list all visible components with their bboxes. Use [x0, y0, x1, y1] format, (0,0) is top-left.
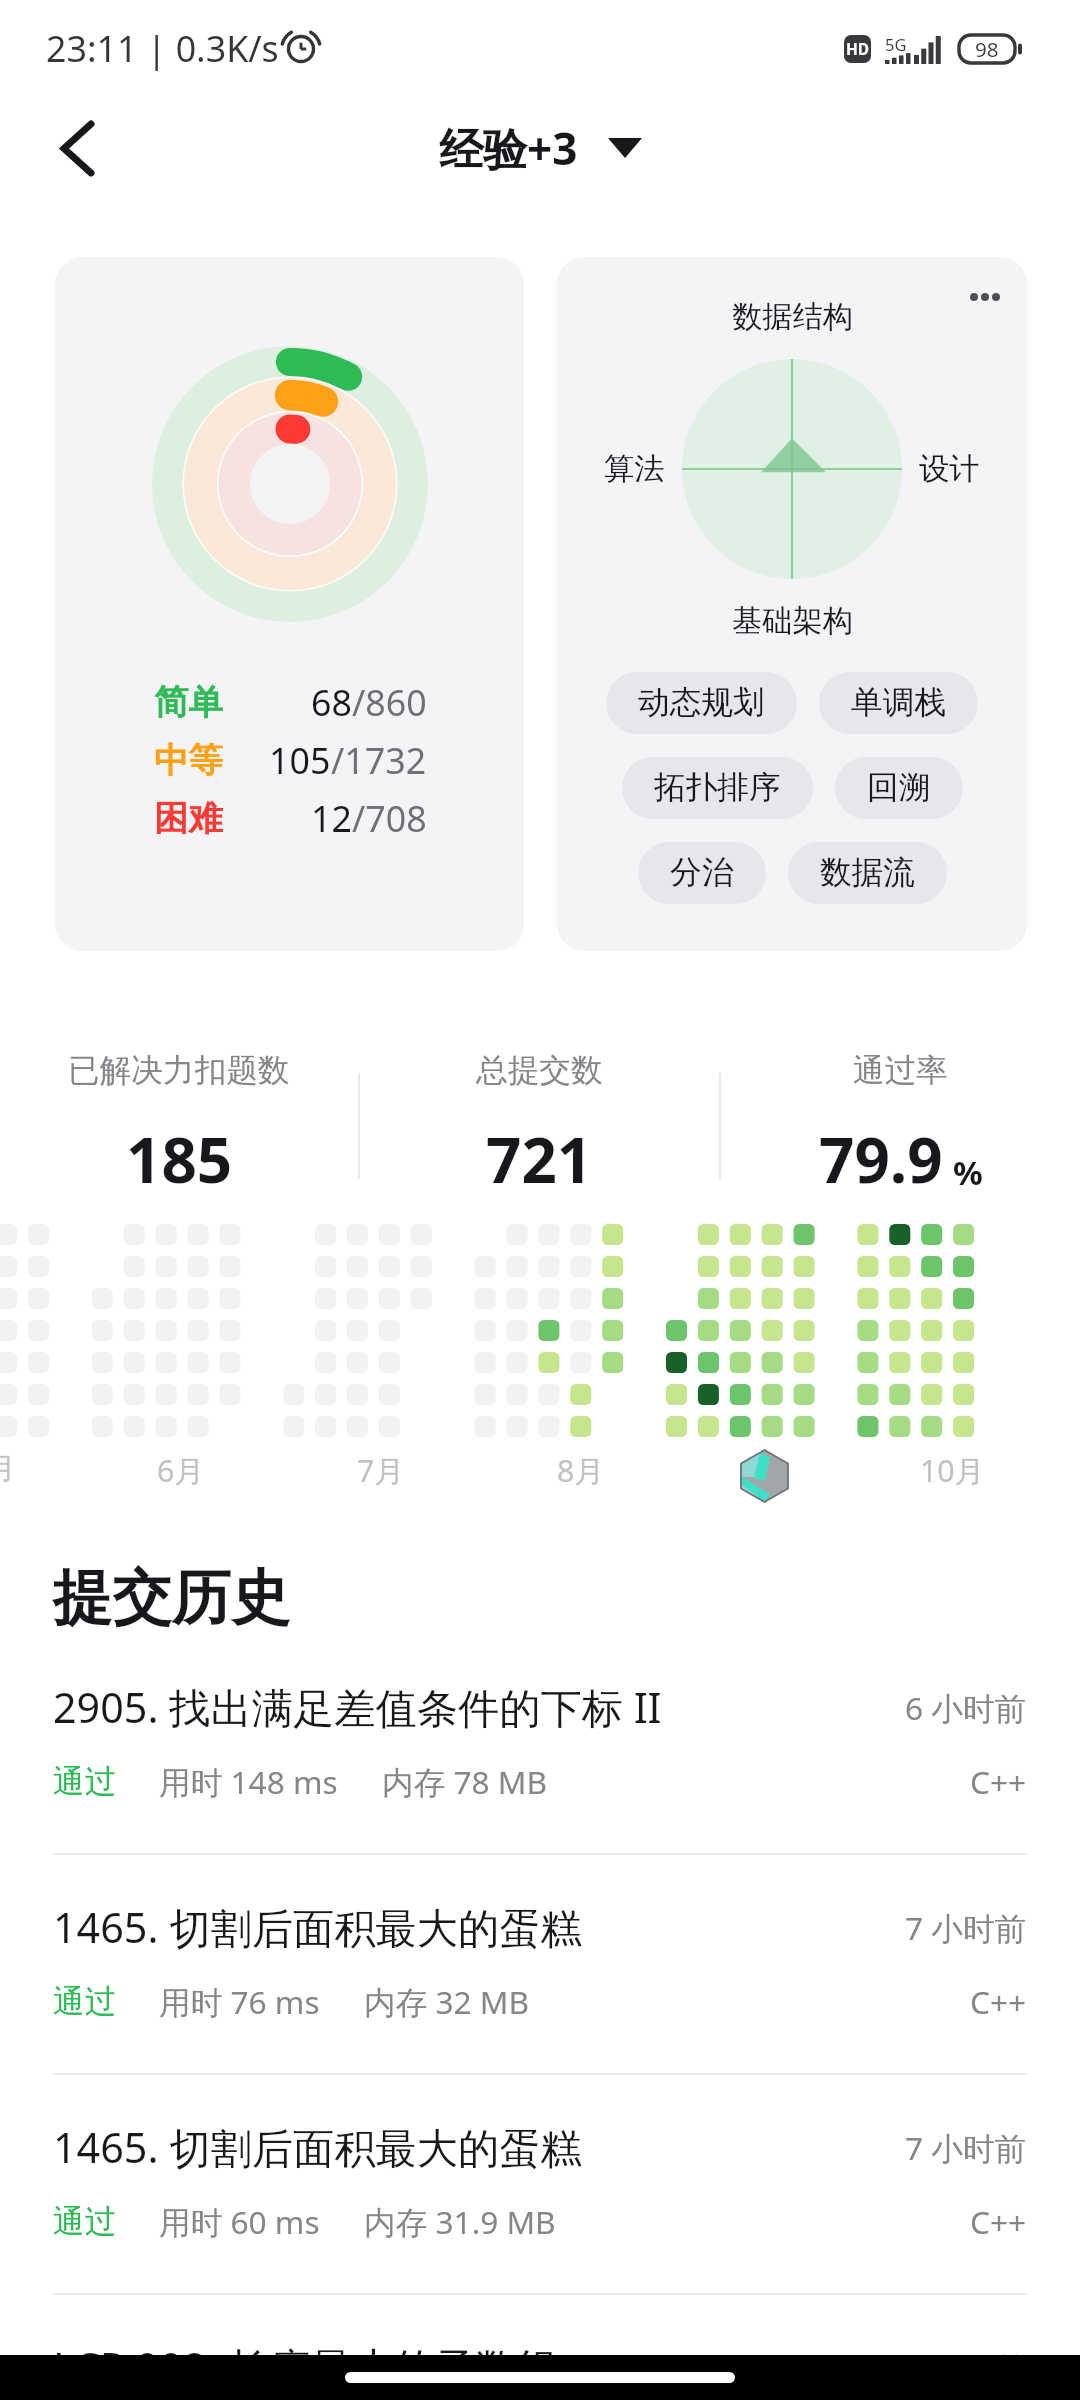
button[interactable]: 拓扑排序	[622, 757, 813, 819]
staticText: 98	[975, 35, 999, 63]
button[interactable]: 动态规划	[606, 672, 797, 734]
staticText: 185	[126, 1117, 233, 1201]
staticText: 单调栈	[851, 683, 946, 723]
button[interactable]: LCP 008. 长度最小的子数组	[0, 2295, 1080, 2400]
staticText: 已解决力扣题数	[68, 1051, 290, 1091]
staticText: 68	[311, 678, 352, 727]
button[interactable]: 单调栈	[819, 672, 978, 734]
staticText: 内存 31.9 MB	[364, 2200, 556, 2243]
staticText: 设计	[919, 450, 980, 488]
staticText: 1465. 切割后面积最大的蛋糕	[53, 2119, 905, 2175]
staticText: 回溯	[867, 768, 931, 808]
staticText: 8月	[557, 1450, 605, 1491]
staticText: 7 小时前	[905, 1906, 1027, 1949]
staticText: 基础架构	[732, 602, 853, 640]
staticText: 月	[0, 1450, 17, 1488]
staticText: 721	[486, 1117, 593, 1201]
staticText: 105	[269, 736, 331, 785]
staticText: 经验+3	[439, 118, 578, 178]
button[interactable]: 经验+3	[429, 108, 652, 188]
staticText: 7 小时前	[905, 2126, 1027, 2169]
staticText: 1465. 切割后面积最大的蛋糕	[53, 1899, 905, 1955]
button[interactable]: Back	[20, 96, 135, 200]
staticText: 算法	[604, 450, 665, 488]
staticText: 5G	[885, 33, 907, 55]
staticText: 2905. 找出满足差值条件的下标 II	[53, 1679, 905, 1735]
staticText: 简单	[154, 681, 223, 724]
staticText: 通过率	[853, 1051, 948, 1091]
staticText: /1732	[331, 736, 427, 785]
staticText: 拓扑排序	[654, 768, 781, 808]
staticText: 提交历史	[53, 1561, 290, 1635]
staticText: 数据流	[820, 853, 915, 893]
button[interactable]: 简单	[55, 257, 524, 951]
button[interactable]: 1465. 切割后面积最大的蛋糕	[0, 1855, 1080, 2073]
staticText: 6 小时前	[905, 1686, 1027, 1729]
button[interactable]: 数据流	[788, 842, 947, 904]
staticText: 79.9	[819, 1117, 943, 1201]
button[interactable]: More options	[963, 286, 1007, 308]
staticText: 12	[311, 794, 352, 843]
staticText: /708	[352, 794, 427, 843]
staticText: 中等	[154, 739, 223, 782]
staticText: 10月	[920, 1450, 985, 1491]
staticText: 通过	[53, 1982, 117, 2022]
staticText: HD	[846, 39, 870, 60]
staticText: 用时 76 ms	[159, 1980, 320, 2023]
staticText: 总提交数	[476, 1051, 603, 1091]
staticText: 通过	[53, 1762, 117, 1802]
button[interactable]: 分治	[638, 842, 766, 904]
staticText: 数据结构	[732, 298, 853, 336]
staticText: 1 天前	[937, 2346, 1027, 2389]
staticText: 用时 148 ms	[159, 1760, 338, 1803]
staticText: 动态规划	[638, 683, 765, 723]
staticText: 23:11 | 0.3K/s	[46, 24, 279, 73]
staticText: 内存 78 MB	[382, 1760, 548, 1803]
staticText: LCP 008. 长度最小的子数组	[53, 2339, 937, 2395]
staticText: 内存 32 MB	[364, 1980, 530, 2023]
button[interactable]: 1465. 切割后面积最大的蛋糕	[0, 2075, 1080, 2293]
staticText: 用时 60 ms	[159, 2200, 320, 2243]
button[interactable]: More options	[557, 257, 1027, 951]
staticText: C++	[970, 1980, 1027, 2023]
staticText: /860	[352, 678, 427, 727]
staticText: C++	[970, 1760, 1027, 1803]
staticText: 6月	[157, 1450, 205, 1491]
button[interactable]: 回溯	[835, 757, 963, 819]
staticText: 通过	[53, 2202, 117, 2242]
button[interactable]: 2905. 找出满足差值条件的下标 II	[0, 1635, 1080, 1853]
staticText: %	[953, 1150, 983, 1195]
other: LeetCode	[741, 1450, 788, 1502]
staticText: 7月	[357, 1450, 405, 1491]
staticText: 困难	[154, 797, 223, 840]
staticText: C++	[970, 2200, 1027, 2243]
staticText: 分治	[670, 853, 734, 893]
